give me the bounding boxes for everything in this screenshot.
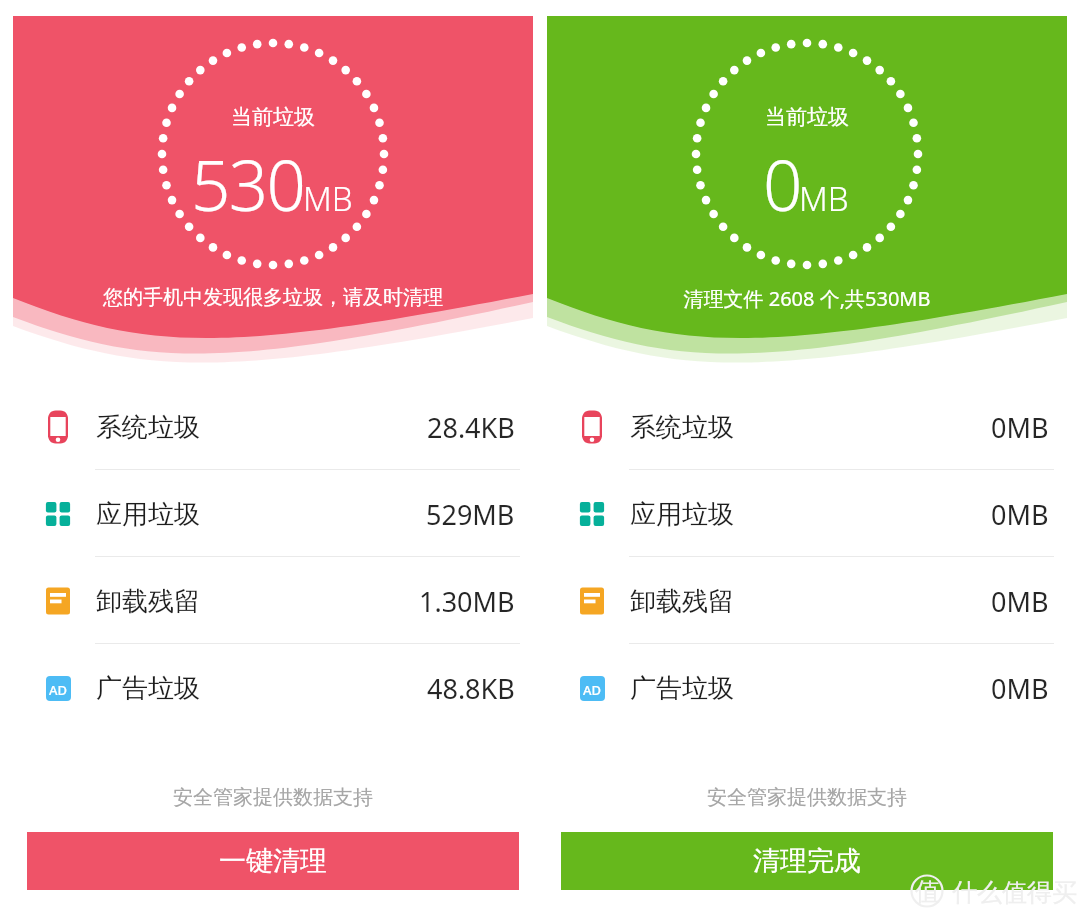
- staticText: 系统垃圾: [630, 411, 734, 444]
- staticText: 广告垃圾: [630, 672, 734, 705]
- staticText: 529MB: [426, 496, 515, 533]
- staticText: 您的手机中发现很多垃圾，请及时清理: [13, 285, 533, 310]
- button[interactable]: 清理完成: [561, 832, 1053, 890]
- staticText: 0MB: [991, 670, 1049, 707]
- staticText: 当前垃圾: [13, 104, 533, 130]
- staticText: 当前垃圾: [547, 104, 1067, 130]
- button[interactable]: AD: [547, 645, 1067, 731]
- staticText: AD: [583, 681, 602, 699]
- staticText: 卸载残留: [630, 585, 734, 618]
- staticText: 0MB: [991, 409, 1049, 446]
- staticText: AD: [49, 681, 68, 699]
- staticText: 应用垃圾: [630, 498, 734, 531]
- button[interactable]: 一键清理: [27, 832, 519, 890]
- staticText: 什么值得买: [952, 877, 1077, 908]
- staticText: 1.30MB: [419, 583, 515, 620]
- staticText: 一键清理: [219, 844, 327, 878]
- staticText: 0MB: [991, 496, 1049, 533]
- button[interactable]: 卸载残留: [547, 558, 1067, 644]
- staticText: 清理文件 2608 个,共530MB: [547, 285, 1067, 312]
- staticText: 0MB: [991, 583, 1049, 620]
- staticText: 48.8KB: [427, 670, 515, 707]
- staticText: 值: [915, 876, 940, 907]
- button[interactable]: 系统垃圾: [547, 384, 1067, 470]
- staticText: 卸载残留: [96, 585, 200, 618]
- button[interactable]: 系统垃圾: [13, 384, 533, 470]
- staticText: 安全管家提供数据支持: [547, 785, 1067, 810]
- staticText: MB: [303, 176, 353, 221]
- staticText: 广告垃圾: [96, 672, 200, 705]
- staticText: 系统垃圾: [96, 411, 200, 444]
- staticText: 安全管家提供数据支持: [13, 785, 533, 810]
- staticText: MB: [799, 176, 849, 221]
- staticText: 清理完成: [753, 844, 861, 878]
- staticText: 应用垃圾: [96, 498, 200, 531]
- button[interactable]: AD: [13, 645, 533, 731]
- staticText: 28.4KB: [427, 409, 515, 446]
- button[interactable]: 卸载残留: [13, 558, 533, 644]
- button[interactable]: 应用垃圾: [13, 471, 533, 557]
- staticText: 0: [763, 137, 801, 231]
- button[interactable]: 应用垃圾: [547, 471, 1067, 557]
- staticText: 530: [191, 137, 305, 231]
